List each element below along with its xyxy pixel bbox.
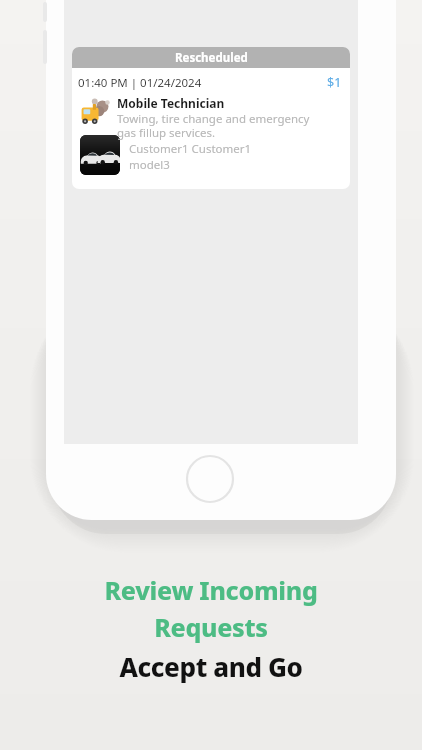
- staticText: Accept and Go: [119, 649, 303, 684]
- staticText: Mobile Technician: [117, 95, 225, 111]
- button[interactable]: Rescheduled: [72, 47, 350, 189]
- staticText: 01:40 PM | 01/24/2024: [78, 75, 202, 91]
- staticText: Customer1 Customer1: [129, 141, 252, 157]
- staticText: Rescheduled: [175, 50, 248, 66]
- staticText: Towing, tire change and emergency gas fi…: [117, 111, 310, 140]
- staticText: Requests: [154, 610, 268, 644]
- staticText: $1: [327, 74, 342, 91]
- staticText: Review Incoming: [104, 573, 318, 607]
- staticText: model3: [129, 157, 170, 173]
- other: Home button: [186, 455, 234, 503]
